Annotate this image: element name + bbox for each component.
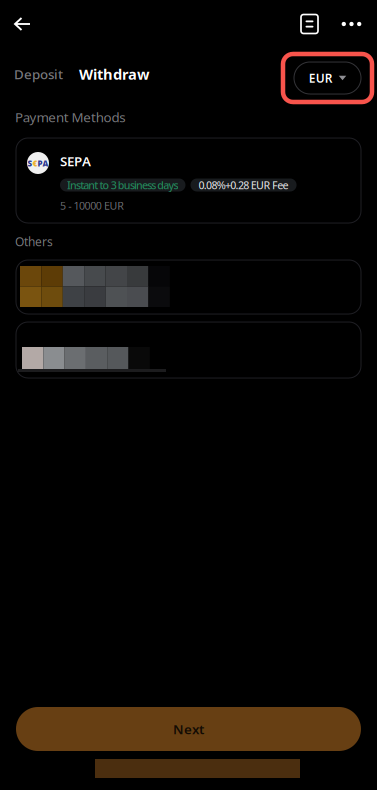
staticText: Deposit <box>14 65 63 83</box>
button[interactable]: Back <box>3 0 42 46</box>
button[interactable]: Withdraw <box>63 55 150 93</box>
staticText: € <box>32 158 37 169</box>
button[interactable]: Payment option <box>16 260 361 314</box>
staticText: 0.08%+0.28 EUR Fee <box>198 178 289 192</box>
staticText: EUR <box>309 70 333 86</box>
button[interactable]: Next <box>16 707 361 751</box>
staticText: Withdraw <box>79 64 150 84</box>
staticText: SEPA <box>60 152 91 170</box>
staticText: 5 - 10000 EUR <box>60 198 124 213</box>
staticText: Instant to 3 business days <box>67 178 178 192</box>
button[interactable]: Deposit <box>14 56 63 92</box>
staticText: PA <box>37 158 48 169</box>
button[interactable]: Payment option <box>16 322 361 378</box>
staticText: Others <box>15 233 53 249</box>
staticText: S <box>27 158 32 169</box>
button[interactable]: Transaction history <box>291 0 332 46</box>
staticText: Payment Methods <box>15 108 125 126</box>
staticText: Next <box>173 720 204 738</box>
button[interactable]: SEPA payment method, instant to 3 busine… <box>16 138 361 223</box>
button[interactable]: Select currency, EUR <box>283 50 372 98</box>
button[interactable]: More options <box>332 0 369 46</box>
